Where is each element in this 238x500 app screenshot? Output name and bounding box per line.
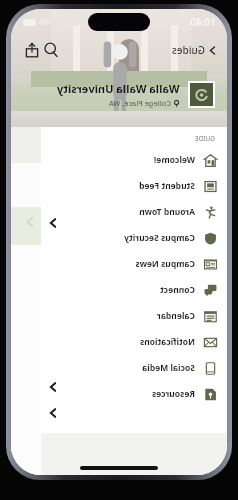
staticText: Campus News bbox=[135, 258, 195, 270]
staticText: Calendar bbox=[157, 310, 195, 322]
button[interactable]: Share bbox=[22, 40, 42, 60]
button[interactable]: Campus Security bbox=[41, 225, 227, 251]
staticText: GUIDE bbox=[194, 134, 215, 143]
staticText: College Place, WA bbox=[108, 98, 171, 108]
staticText: 10:40 bbox=[190, 15, 216, 29]
staticText: Around Town bbox=[139, 206, 195, 218]
button[interactable]: Around Town bbox=[47, 217, 59, 229]
staticText: Student Feed bbox=[139, 180, 195, 192]
button[interactable]: Around Town bbox=[41, 199, 227, 225]
button[interactable]: Resources bbox=[47, 407, 59, 419]
staticText: Social Media bbox=[142, 362, 195, 374]
button[interactable]: Social Media bbox=[41, 355, 227, 381]
button[interactable]: Connect bbox=[41, 277, 227, 303]
button[interactable]: Student Feed bbox=[41, 173, 227, 199]
staticText: Connect bbox=[160, 284, 195, 296]
button[interactable]: Welcome! bbox=[41, 147, 227, 173]
staticText: Campus Security bbox=[124, 232, 195, 244]
staticText: Welcome! bbox=[153, 154, 195, 166]
staticText: Notifications bbox=[139, 336, 195, 348]
button[interactable]: Calendar bbox=[41, 303, 227, 329]
button[interactable]: Search bbox=[41, 40, 61, 60]
button[interactable]: Resources bbox=[41, 381, 227, 407]
button[interactable]: Guides bbox=[171, 43, 218, 57]
button[interactable]: Campus News bbox=[41, 251, 227, 277]
button[interactable]: Notifications bbox=[41, 329, 227, 355]
button[interactable]: Social Media bbox=[47, 381, 59, 393]
staticText: Walla Walla University bbox=[57, 81, 180, 96]
staticText: Guides bbox=[171, 43, 205, 57]
staticText: Resources bbox=[151, 388, 195, 400]
